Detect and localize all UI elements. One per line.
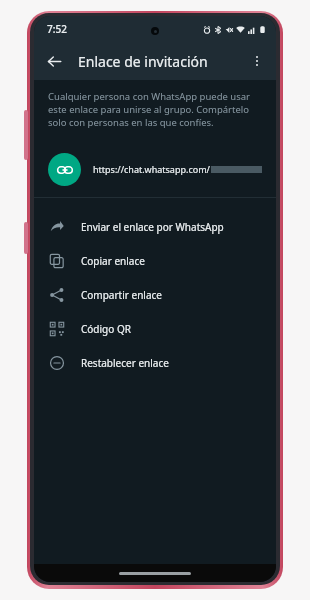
button[interactable]: Enviar el enlace por WhatsApp: [34, 210, 276, 244]
button[interactable]: Copiar enlace: [34, 244, 276, 278]
button[interactable]: Restablecer enlace: [34, 346, 276, 380]
staticText: Enlace de invitación: [78, 52, 208, 71]
staticText: Código QR: [81, 322, 131, 336]
staticText: https://chat.whatsapp.com/: [93, 163, 210, 175]
staticText: 7:52: [47, 22, 67, 36]
button[interactable]: Atrás: [38, 45, 70, 77]
staticText: Compartir enlace: [81, 288, 162, 302]
button[interactable]: Compartir enlace: [34, 278, 276, 312]
staticText: Cualquier persona con WhatsApp puede usa…: [48, 90, 262, 129]
staticText: Enviar el enlace por WhatsApp: [81, 220, 224, 234]
staticText: Copiar enlace: [81, 254, 145, 268]
button[interactable]: Más opciones: [242, 46, 272, 76]
button[interactable]: Código QR: [34, 312, 276, 346]
button[interactable]: https://chat.whatsapp.com/: [34, 141, 276, 197]
staticText: Restablecer enlace: [81, 356, 169, 370]
